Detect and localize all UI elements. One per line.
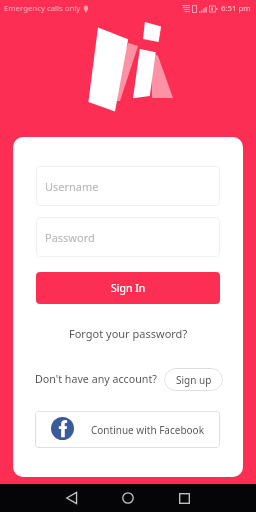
staticText: 6:51 pm <box>221 3 251 14</box>
staticText: Sign up <box>176 373 212 387</box>
button[interactable]: Sign In <box>36 272 220 304</box>
button[interactable]: Back <box>57 484 86 512</box>
button[interactable]: Password <box>36 217 220 257</box>
staticText: Password <box>45 230 95 245</box>
button[interactable]: Username <box>36 166 220 206</box>
button[interactable]: Recent apps <box>170 484 199 512</box>
button[interactable]: Home <box>113 484 142 512</box>
staticText: Continue with Facebook <box>91 423 204 437</box>
button[interactable]: Sign up <box>164 368 223 391</box>
staticText: Sign In <box>111 281 146 295</box>
button[interactable]: Continue with Facebook <box>35 411 220 448</box>
staticText: Forgot your password? <box>69 326 188 341</box>
staticText: Emergency calls only <box>4 3 81 14</box>
button[interactable]: Forgot your password? <box>63 322 194 345</box>
staticText: Username <box>45 179 99 194</box>
staticText: Don't have any account? <box>35 372 157 387</box>
